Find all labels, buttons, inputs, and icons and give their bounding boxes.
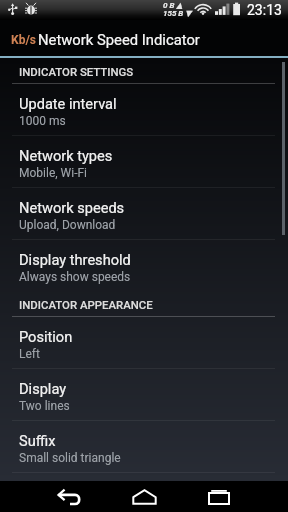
staticText: Mobile, Wi-Fi xyxy=(19,166,88,180)
staticText: 1000 ms xyxy=(19,114,66,128)
staticText: Kb/s xyxy=(11,33,36,47)
staticText: 155 B ▼ xyxy=(163,9,192,18)
button[interactable]: Network types xyxy=(0,136,288,188)
staticText: Display threshold xyxy=(19,251,131,268)
button[interactable]: Network speeds xyxy=(0,188,288,240)
staticText: Suffix xyxy=(19,432,56,449)
staticText: Two lines xyxy=(19,399,70,413)
button[interactable]: Display threshold xyxy=(0,240,288,292)
button[interactable]: Recent apps xyxy=(195,481,243,512)
button[interactable]: Suffix xyxy=(0,421,288,473)
staticText: Display xyxy=(19,380,67,397)
staticText: Network Speed Indicator xyxy=(38,31,200,48)
staticText: Update interval xyxy=(19,95,117,112)
button[interactable]: Back xyxy=(45,482,93,512)
staticText: INDICATOR APPEARANCE xyxy=(19,298,153,311)
staticText: Left xyxy=(19,347,40,361)
button[interactable]: Home xyxy=(120,481,168,512)
button[interactable]: Update interval xyxy=(0,84,288,136)
staticText: Network types xyxy=(19,147,113,164)
button[interactable]: Position xyxy=(0,317,288,369)
staticText: Network speeds xyxy=(19,199,125,216)
staticText: Small solid triangle xyxy=(19,451,121,465)
button[interactable]: Display xyxy=(0,369,288,421)
staticText: 23:13 xyxy=(247,2,282,18)
staticText: INDICATOR SETTINGS xyxy=(19,65,134,78)
staticText: Position xyxy=(19,328,73,345)
staticText: Always show speeds xyxy=(19,270,131,284)
staticText: 0 B ▲ xyxy=(163,1,183,10)
button[interactable]: Kb/s xyxy=(0,20,288,58)
staticText: Upload, Download xyxy=(19,218,116,232)
